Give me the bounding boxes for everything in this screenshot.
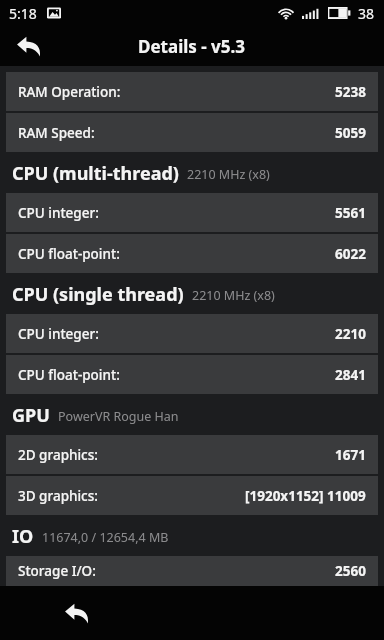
staticText: 3D graphics: <box>18 487 98 505</box>
staticText: CPU float-point: <box>18 245 120 263</box>
staticText: 5238 <box>335 83 366 101</box>
staticText: 1671 <box>335 446 366 464</box>
button[interactable]: GPU <box>0 396 384 435</box>
staticText: [1920x1152] 11009 <box>245 487 366 505</box>
staticText: 2560 <box>335 562 366 580</box>
staticText: IO <box>12 524 34 549</box>
staticText: CPU (single thread) <box>12 282 184 307</box>
button[interactable]: RAM Speed: <box>6 113 378 152</box>
staticText: 11674,0 / 12654,4 MB <box>42 529 169 546</box>
staticText: CPU integer: <box>18 325 99 343</box>
button[interactable]: CPU integer: <box>6 314 378 353</box>
staticText: RAM Speed: <box>18 124 95 142</box>
staticText: Details - v5.3 <box>138 35 246 58</box>
staticText: 2210 MHz (x8) <box>187 166 270 183</box>
staticText: PowerVR Rogue Han <box>58 408 179 425</box>
staticText: 2841 <box>335 366 366 384</box>
button[interactable]: CPU (multi-thread) <box>0 154 384 193</box>
button[interactable]: Storage I/O: <box>6 556 378 586</box>
staticText: Storage I/O: <box>18 562 96 580</box>
staticText: 5059 <box>335 124 366 142</box>
staticText: 38 <box>358 4 375 23</box>
staticText: 2D graphics: <box>18 446 98 464</box>
button[interactable]: CPU float-point: <box>6 355 378 394</box>
staticText: CPU float-point: <box>18 366 120 384</box>
button[interactable]: CPU integer: <box>6 193 378 232</box>
staticText: RAM Operation: <box>18 83 121 101</box>
staticText: 2210 MHz (x8) <box>192 287 275 304</box>
button[interactable]: Back <box>56 592 98 634</box>
staticText: GPU <box>12 403 50 428</box>
button[interactable]: CPU float-point: <box>6 234 378 273</box>
button[interactable]: CPU (single thread) <box>0 275 384 314</box>
button[interactable]: 3D graphics: <box>6 476 378 515</box>
staticText: 5:18 <box>9 4 37 23</box>
staticText: CPU integer: <box>18 204 99 222</box>
staticText: 5561 <box>335 204 366 222</box>
button[interactable]: 2D graphics: <box>6 435 378 474</box>
staticText: CPU (multi-thread) <box>12 161 179 186</box>
staticText: 6022 <box>335 245 366 263</box>
button[interactable]: Back <box>10 27 48 65</box>
button[interactable]: RAM Operation: <box>6 72 378 111</box>
staticText: 2210 <box>335 325 366 343</box>
button[interactable]: IO <box>0 517 384 556</box>
